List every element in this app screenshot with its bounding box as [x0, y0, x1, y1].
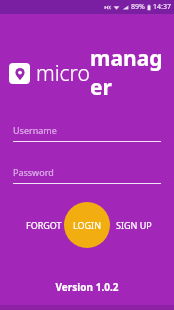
staticText: micro — [36, 59, 90, 88]
staticText: SIGN UP — [116, 219, 152, 231]
staticText: LOGIN — [73, 219, 102, 231]
button[interactable]: FORGOT — [24, 216, 64, 234]
staticText: manager — [90, 44, 174, 102]
button[interactable]: Username — [13, 124, 161, 142]
staticText: Password — [13, 166, 54, 178]
button[interactable]: LOGIN — [64, 202, 110, 248]
button[interactable]: SIGN UP — [114, 216, 154, 234]
staticText: 89% — [131, 2, 145, 12]
button[interactable]: Password — [13, 166, 161, 184]
staticText: 14:37 — [153, 2, 171, 12]
staticText: Version 1.0.2 — [0, 280, 174, 294]
staticText: FORGOT — [26, 219, 62, 231]
staticText: Username — [13, 124, 57, 136]
